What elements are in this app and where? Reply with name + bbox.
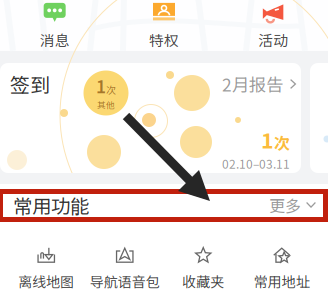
staticText: 其他 bbox=[97, 98, 115, 111]
button[interactable]: 消息 bbox=[0, 0, 109, 59]
button[interactable]: 离线地图 bbox=[7, 247, 85, 289]
button[interactable]: 活动 bbox=[219, 0, 328, 59]
staticText: 签到 bbox=[10, 69, 50, 98]
staticText: 次 bbox=[106, 82, 116, 97]
button[interactable]: 特权 bbox=[109, 0, 219, 59]
button[interactable]: 2月报告 bbox=[222, 67, 296, 101]
button[interactable]: 常用地址 bbox=[242, 247, 321, 289]
staticText: 离线地图 bbox=[18, 271, 74, 289]
staticText: 消息 bbox=[40, 29, 70, 50]
staticText: 收藏夹 bbox=[182, 271, 224, 289]
staticText: 2月报告 bbox=[222, 71, 283, 97]
staticText: 导航语音包 bbox=[90, 271, 160, 289]
staticText: 1 bbox=[96, 73, 106, 98]
staticText: 更多 bbox=[269, 193, 301, 217]
staticText: 02.10–03.11 bbox=[222, 155, 290, 172]
staticText: 1 bbox=[261, 124, 274, 155]
staticText: 常用功能 bbox=[13, 191, 89, 219]
staticText: 次 bbox=[274, 131, 290, 154]
button[interactable]: 收藏夹 bbox=[164, 247, 242, 289]
button[interactable]: 常用功能 bbox=[0, 192, 328, 218]
staticText: 活动 bbox=[258, 29, 288, 50]
button[interactable]: 导航语音包 bbox=[85, 247, 164, 289]
staticText: 特权 bbox=[149, 29, 179, 50]
staticText: 常用地址 bbox=[254, 271, 310, 289]
